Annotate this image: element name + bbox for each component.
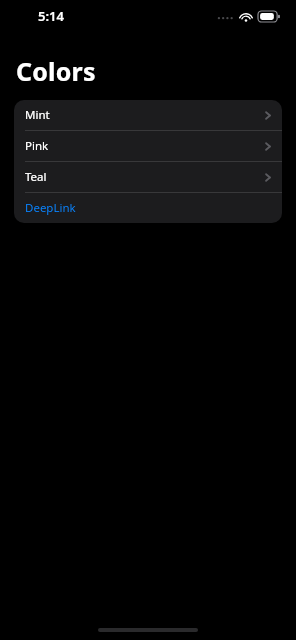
button[interactable]: Pink	[14, 131, 282, 161]
button[interactable]: DeepLink	[14, 193, 282, 223]
other: Open	[265, 172, 271, 183]
staticText: DeepLink	[25, 200, 76, 216]
staticText: Colors	[16, 54, 96, 88]
staticText: Pink	[25, 138, 49, 154]
other: Open	[265, 110, 271, 121]
staticText: 5:14	[38, 7, 64, 25]
button[interactable]: Teal	[14, 162, 282, 192]
button[interactable]: Mint	[14, 100, 282, 130]
other: Open	[265, 141, 271, 152]
staticText: Mint	[25, 107, 50, 123]
staticText: Teal	[25, 169, 47, 185]
